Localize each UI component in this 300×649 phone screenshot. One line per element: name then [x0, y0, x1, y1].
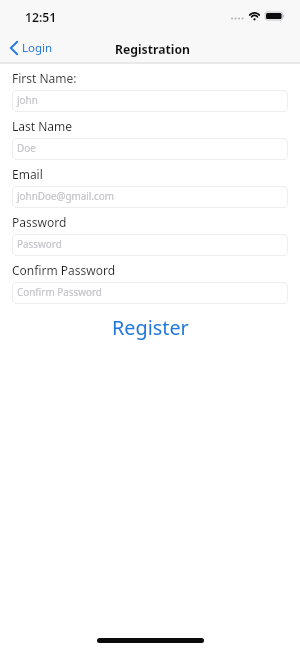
other: Wi-Fi	[247, 12, 262, 21]
other: Cellular signal	[231, 17, 244, 20]
staticText: Password	[12, 214, 67, 230]
staticText: Last Name	[12, 118, 73, 134]
staticText: johnDoe@gmail.com	[17, 189, 115, 202]
staticText: Login	[22, 40, 53, 56]
staticText: Register	[112, 314, 189, 341]
button[interactable]: Confirm Password	[12, 282, 288, 304]
button[interactable]: Doe	[12, 138, 288, 160]
staticText: Confirm Password	[17, 285, 102, 298]
other: Battery full	[265, 12, 285, 21]
staticText: Email	[12, 166, 43, 182]
button[interactable]: Register	[12, 308, 288, 347]
button[interactable]: johnDoe@gmail.com	[12, 186, 288, 208]
staticText: First Name:	[12, 70, 77, 86]
button[interactable]: Login	[8, 38, 55, 58]
staticText: Registration	[115, 41, 191, 58]
staticText: Confirm Password	[12, 262, 116, 278]
staticText: Doe	[17, 141, 36, 154]
staticText: john	[17, 93, 38, 106]
button[interactable]: john	[12, 90, 288, 112]
button[interactable]: Password	[12, 234, 288, 256]
staticText: Password	[17, 237, 62, 250]
staticText: 12:51	[25, 9, 57, 26]
